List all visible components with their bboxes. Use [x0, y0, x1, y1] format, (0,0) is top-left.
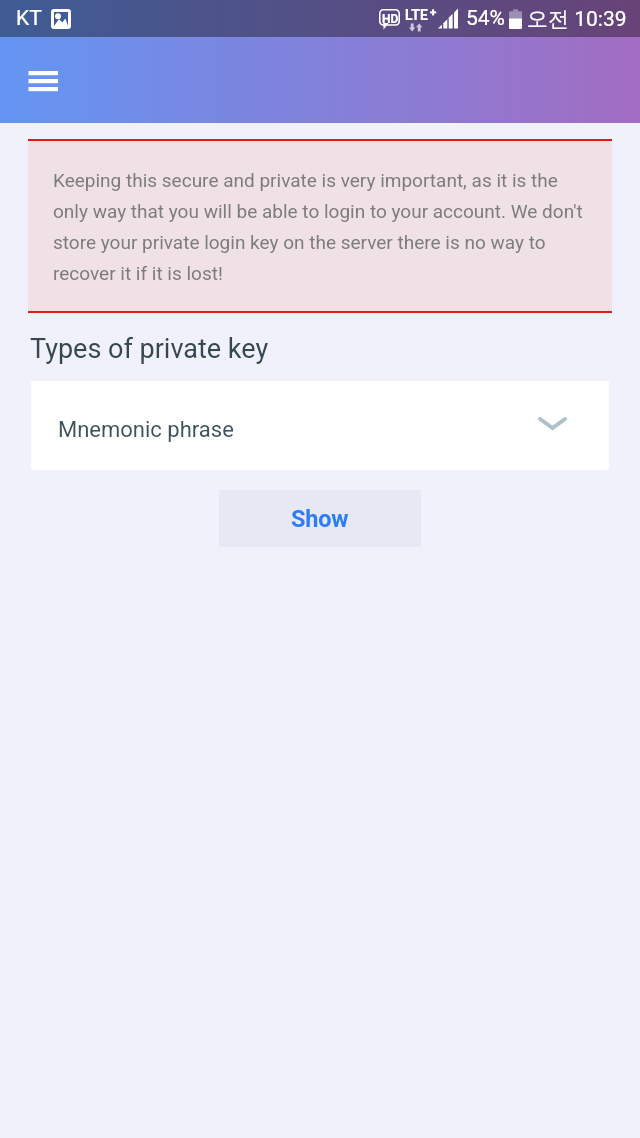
staticText: 54%	[466, 6, 505, 31]
staticText: Show	[291, 505, 349, 533]
staticText: LTE	[405, 7, 429, 23]
button[interactable]: Open navigation menu	[24, 61, 62, 99]
button[interactable]: Mnemonic phrase	[31, 381, 609, 470]
staticText: KT	[16, 6, 42, 31]
staticText: Types of private key	[30, 333, 269, 365]
staticText: 오전 10:39	[527, 6, 627, 32]
button[interactable]: Show	[219, 490, 421, 547]
staticText: Mnemonic phrase	[58, 417, 234, 443]
staticText: HD	[382, 12, 399, 26]
staticText: Keeping this secure and private is very …	[53, 169, 587, 284]
